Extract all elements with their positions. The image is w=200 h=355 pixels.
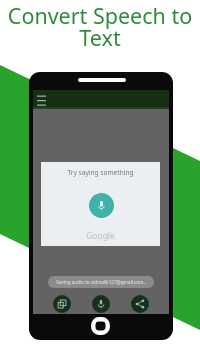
button[interactable]: Menu xyxy=(37,95,46,106)
button[interactable]: Microphone xyxy=(89,193,114,218)
button[interactable]: Record xyxy=(92,295,110,313)
button[interactable]: Copy xyxy=(53,295,71,313)
staticText: Try saying something xyxy=(41,168,160,177)
staticText: Google xyxy=(41,230,160,242)
staticText: Saving audio to sidmalik127@gmail.com.. xyxy=(48,279,154,285)
button[interactable]: Home xyxy=(91,317,110,335)
staticText: Convert Speech to Text xyxy=(0,1,200,53)
button[interactable]: Share xyxy=(131,295,149,313)
